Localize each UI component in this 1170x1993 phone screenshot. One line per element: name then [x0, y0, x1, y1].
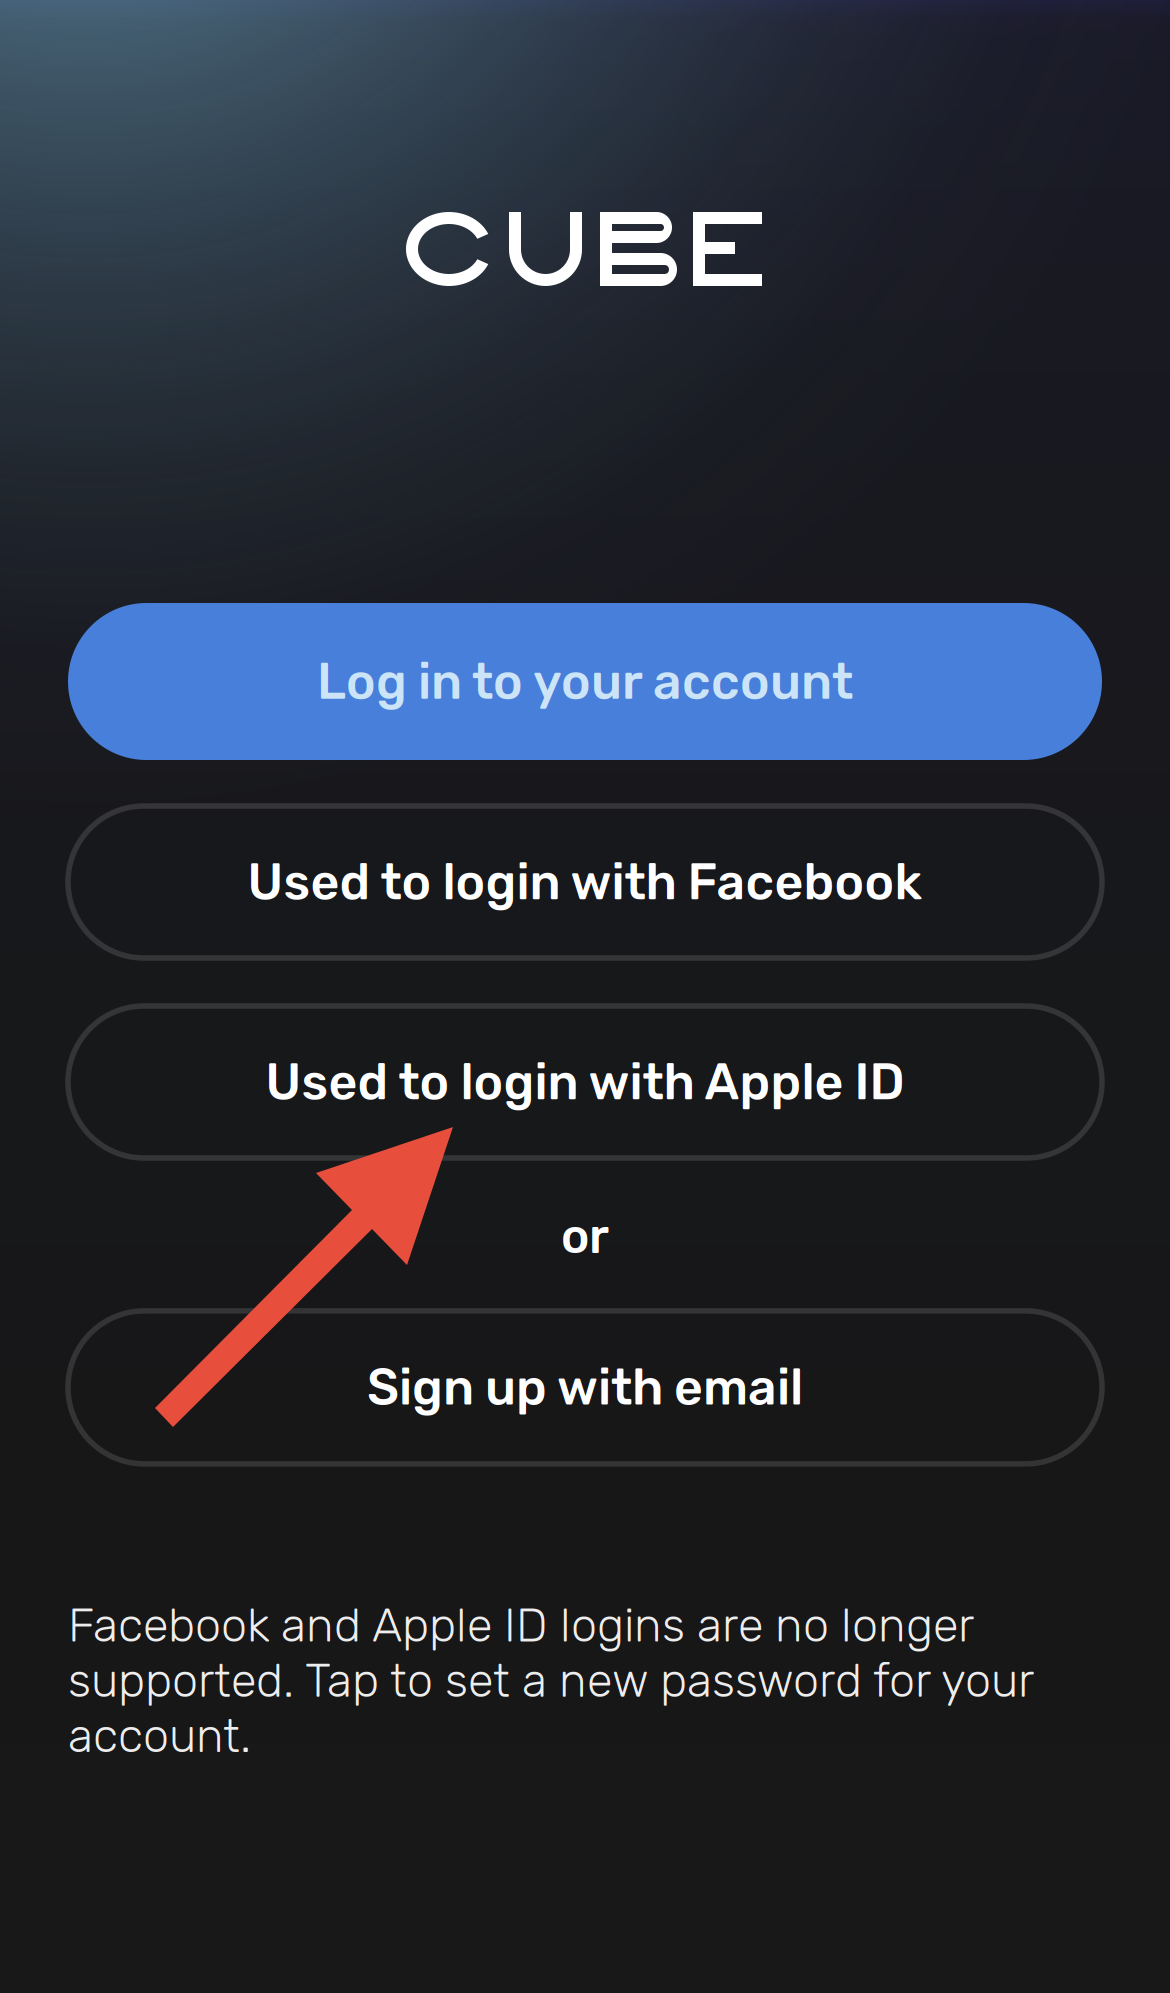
- staticText: or: [561, 1208, 609, 1265]
- staticText: Facebook and Apple ID logins are no long…: [68, 1598, 1033, 1764]
- staticText: Used to login with Apple ID: [265, 1052, 904, 1112]
- button[interactable]: Log in to your account: [68, 603, 1102, 760]
- button[interactable]: Used to login with Facebook: [68, 806, 1102, 958]
- staticText: Log in to your account: [317, 652, 853, 711]
- staticText: Used to login with Facebook: [247, 852, 922, 912]
- button[interactable]: Used to login with Apple ID: [68, 1006, 1102, 1158]
- staticText: Sign up with email: [367, 1358, 803, 1417]
- button[interactable]: Sign up with email: [68, 1311, 1102, 1464]
